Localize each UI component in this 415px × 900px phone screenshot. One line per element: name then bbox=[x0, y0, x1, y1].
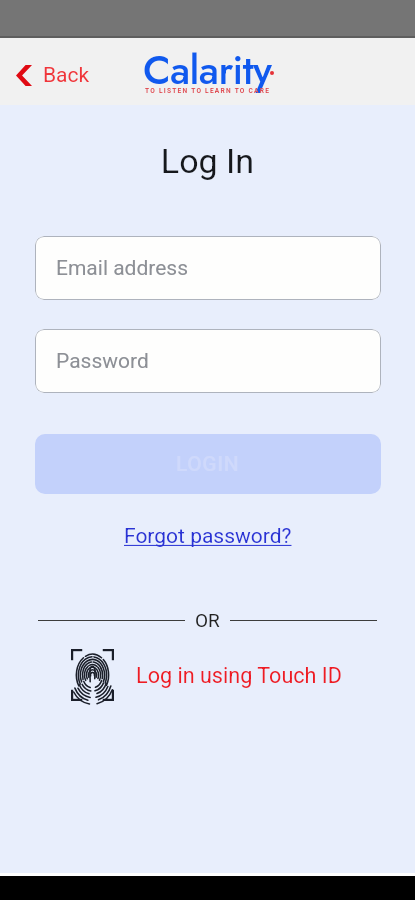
staticText: Log in using Touch ID bbox=[136, 663, 342, 688]
staticText: OR bbox=[195, 609, 220, 631]
staticText: LOGIN bbox=[176, 452, 240, 477]
staticText: Password bbox=[56, 349, 149, 374]
staticText: Forgot password? bbox=[124, 524, 292, 549]
button[interactable]: Password bbox=[35, 329, 381, 393]
staticText: TO LISTEN TO LEARN TO CARE bbox=[145, 87, 271, 95]
button[interactable]: Forgot password? bbox=[120, 522, 296, 551]
staticText: Calarity bbox=[143, 41, 272, 99]
other: Touch ID bbox=[71, 649, 114, 701]
staticText: Email address bbox=[56, 256, 189, 281]
button[interactable]: Email address bbox=[35, 236, 381, 300]
button[interactable]: Back bbox=[0, 55, 104, 96]
staticText: Log In bbox=[0, 141, 415, 181]
button[interactable]: Touch ID bbox=[71, 649, 342, 701]
staticText: Back bbox=[43, 63, 90, 88]
